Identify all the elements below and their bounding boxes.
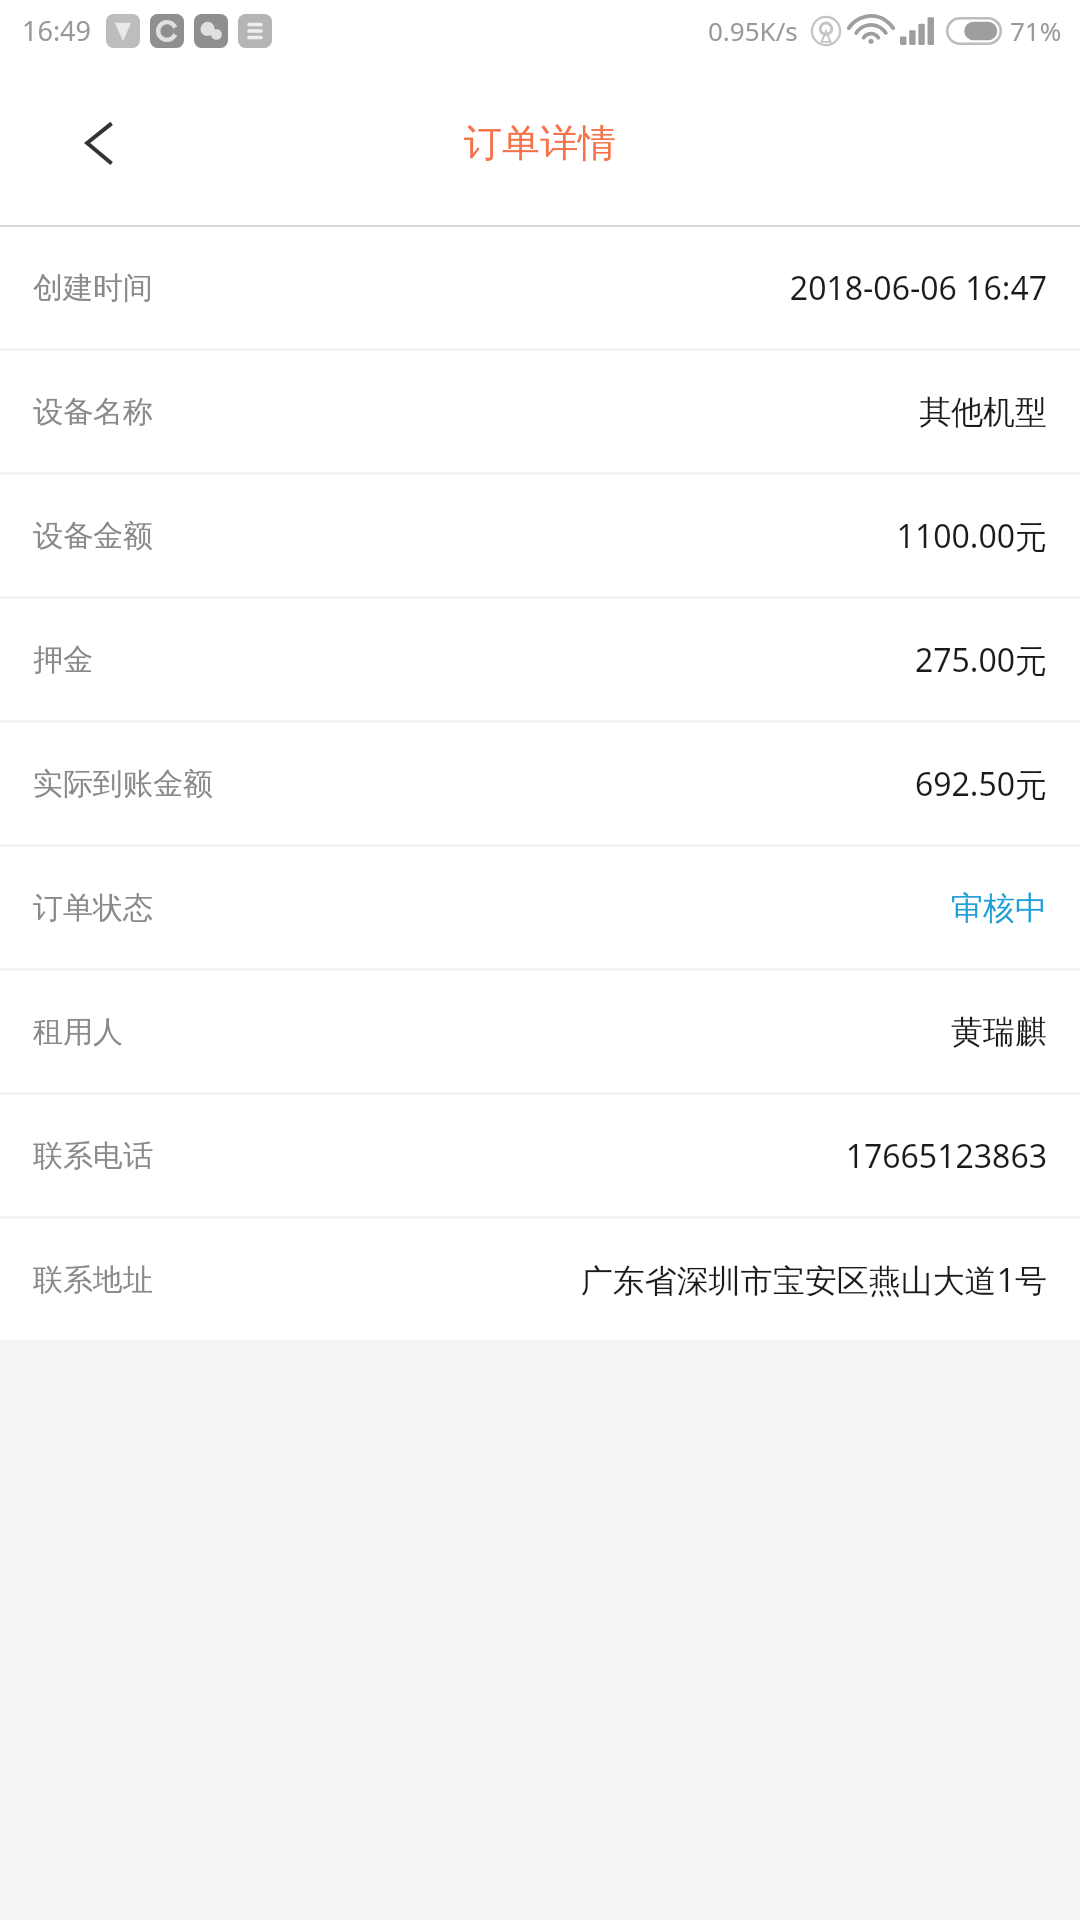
button[interactable]: 设备金额	[0, 475, 1080, 596]
staticText: 其他机型	[919, 392, 1047, 432]
button[interactable]: 创建时间	[0, 227, 1080, 348]
staticText: 设备金额	[33, 517, 153, 555]
staticText: 17665123863	[845, 1134, 1047, 1178]
button[interactable]: 订单状态	[0, 847, 1080, 968]
staticText: 黄瑞麒	[951, 1012, 1047, 1052]
staticText: 实际到账金额	[33, 765, 213, 803]
staticText: 订单详情	[464, 119, 616, 167]
staticText: 0.95K/s	[708, 13, 798, 48]
staticText: 审核中	[951, 888, 1047, 928]
button[interactable]: 联系电话	[0, 1095, 1080, 1216]
staticText: 1100.00元	[896, 514, 1047, 558]
staticText: 71%	[1010, 13, 1062, 48]
staticText: 275.00元	[914, 638, 1047, 682]
button[interactable]: Back	[60, 103, 140, 183]
staticText: 16:49	[22, 12, 92, 49]
staticText: 订单状态	[33, 889, 153, 927]
staticText: 2018-06-06 16:47	[789, 266, 1047, 310]
staticText: 广东省深圳市宝安区燕山大道1号	[580, 1258, 1047, 1302]
staticText: 租用人	[33, 1013, 123, 1051]
staticText: 联系电话	[33, 1137, 153, 1175]
staticText: 设备名称	[33, 393, 153, 431]
staticText: 创建时间	[33, 269, 153, 307]
button[interactable]: 实际到账金额	[0, 723, 1080, 844]
button[interactable]: 租用人	[0, 971, 1080, 1092]
button[interactable]: 押金	[0, 599, 1080, 720]
button[interactable]: 设备名称	[0, 351, 1080, 472]
staticText: 692.50元	[914, 762, 1047, 806]
staticText: 联系地址	[33, 1261, 153, 1299]
staticText: 押金	[33, 641, 93, 679]
button[interactable]: 联系地址	[0, 1219, 1080, 1340]
